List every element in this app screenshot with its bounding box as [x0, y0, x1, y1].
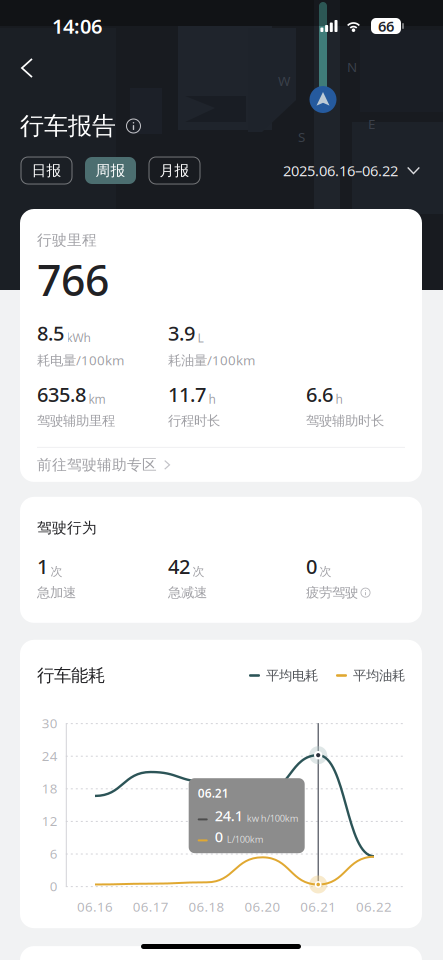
staticText: 驾驶辅助里程: [37, 412, 115, 429]
staticText: 18: [42, 779, 58, 797]
staticText: 0: [50, 877, 58, 895]
staticText: 前往驾驶辅助专区: [37, 456, 157, 474]
staticText: h: [208, 391, 215, 407]
staticText: 平均电耗: [266, 667, 318, 684]
staticText: 24: [42, 747, 58, 765]
staticText: km: [88, 391, 105, 407]
staticText: 6: [50, 845, 58, 862]
staticText: 06.22: [356, 898, 392, 915]
button[interactable]: 2025.06.16–06.22: [283, 157, 420, 184]
staticText: 行车能耗: [37, 665, 105, 686]
staticText: 06.17: [133, 898, 169, 915]
staticText: 次: [192, 564, 204, 579]
staticText: kWh: [66, 330, 90, 346]
button[interactable]: 关于行车报告: [126, 118, 141, 133]
button[interactable]: 月报: [149, 157, 200, 184]
staticText: 42: [168, 553, 190, 579]
staticText: 0: [215, 827, 223, 846]
staticText: 驾驶行为: [37, 519, 97, 537]
staticText: 12: [42, 812, 58, 830]
staticText: 3.9: [168, 320, 195, 346]
staticText: 月报: [159, 161, 189, 179]
staticText: 2025.06.16–06.22: [283, 161, 398, 180]
staticText: 766: [37, 251, 109, 308]
staticText: 0: [306, 553, 317, 579]
button[interactable]: 前往驾驶辅助专区: [37, 448, 405, 482]
staticText: 行车报告: [20, 111, 116, 141]
staticText: L: [197, 330, 203, 346]
staticText: 急减速: [168, 584, 207, 601]
staticText: 耗油量/100km: [168, 351, 255, 369]
staticText: h: [335, 391, 342, 407]
staticText: 周报: [95, 161, 125, 179]
staticText: 平均油耗: [353, 667, 405, 684]
staticText: 06.21: [300, 898, 336, 915]
staticText: 次: [319, 564, 331, 579]
staticText: 06.18: [189, 898, 225, 915]
staticText: 14:06: [52, 13, 102, 39]
staticText: 耗电量/100km: [37, 351, 124, 369]
staticText: 06.20: [244, 898, 280, 915]
staticText: W: [278, 72, 290, 90]
staticText: 30: [42, 714, 58, 732]
staticText: 次: [50, 564, 62, 579]
staticText: 635.8: [37, 381, 86, 407]
staticText: S: [298, 128, 305, 146]
staticText: 疲劳驾驶: [306, 584, 358, 601]
button[interactable]: 返回: [5, 46, 49, 90]
staticText: 行驶里程: [37, 231, 97, 249]
staticText: 行程时长: [168, 412, 220, 429]
staticText: 驾驶辅助时长: [306, 412, 384, 429]
staticText: 06.16: [77, 898, 113, 915]
staticText: 6.6: [306, 381, 333, 407]
staticText: 06.21: [198, 785, 229, 801]
staticText: L/100km: [227, 833, 264, 845]
staticText: 11.7: [168, 381, 206, 407]
staticText: 66: [378, 16, 394, 36]
staticText: 日报: [31, 161, 61, 179]
staticText: 1: [37, 553, 48, 579]
button[interactable]: 周报: [85, 157, 136, 184]
staticText: N: [347, 58, 357, 76]
staticText: kw h/100km: [247, 812, 299, 824]
staticText: 急加速: [37, 584, 76, 601]
staticText: E: [368, 115, 375, 133]
button[interactable]: 日报: [21, 157, 72, 184]
staticText: 24.1: [215, 806, 243, 825]
staticText: 8.5: [37, 320, 64, 346]
